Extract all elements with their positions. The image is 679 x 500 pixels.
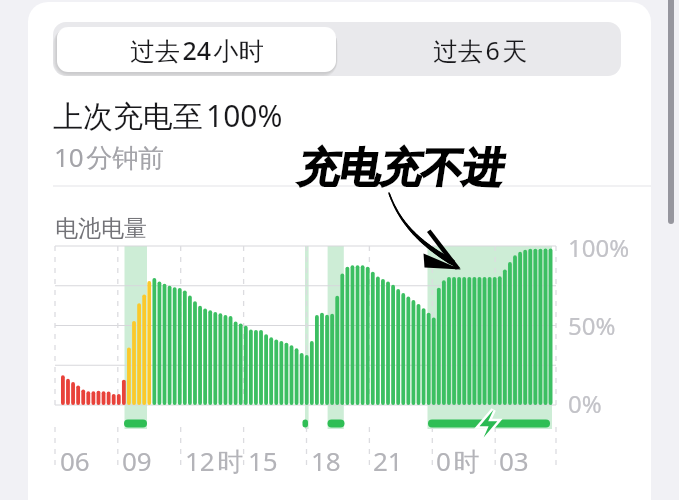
staticText: 过去 24 小时: [130, 33, 264, 67]
staticText: 21: [373, 443, 403, 478]
staticText: 15: [248, 443, 278, 478]
staticText: 上次充电至 100%: [53, 95, 283, 136]
staticText: 50%: [568, 309, 616, 342]
staticText: 电池电量: [55, 214, 147, 243]
staticText: 0 时: [436, 443, 480, 479]
staticText: 100%: [568, 231, 630, 264]
staticText: 03: [499, 443, 529, 478]
staticText: 09: [122, 443, 152, 478]
staticText: 10 分钟前: [54, 139, 165, 175]
staticText: 12 时: [185, 443, 244, 479]
other: Battery level chart: [0, 0, 679, 500]
staticText: 18: [311, 443, 341, 478]
button[interactable]: 过去 6 天: [342, 27, 618, 72]
button[interactable]: 过去 24 小时: [57, 27, 336, 72]
staticText: 0%: [568, 387, 602, 420]
staticText: 06: [60, 443, 90, 478]
staticText: 过去 6 天: [433, 33, 528, 67]
